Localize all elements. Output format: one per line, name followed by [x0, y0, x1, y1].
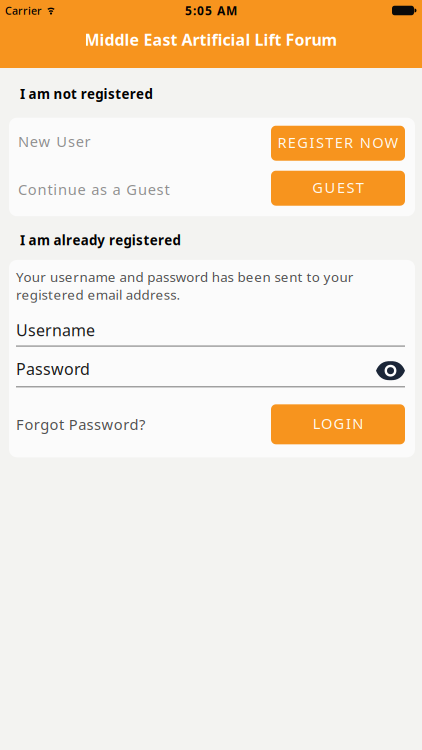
staticText: LOGIN	[313, 414, 363, 433]
button[interactable]: Show password	[376, 361, 405, 380]
button[interactable]: Forgot Password?	[16, 415, 145, 434]
staticText: GUEST	[312, 177, 364, 197]
staticText: 5:05 AM	[185, 2, 237, 18]
staticText: Password	[16, 358, 90, 379]
staticText: Your username and password has been sent…	[16, 268, 354, 303]
staticText: Username	[16, 319, 95, 340]
staticText: Continue as a Guest	[18, 179, 169, 199]
staticText: Forgot Password?	[16, 415, 145, 434]
button[interactable]: GUEST	[271, 171, 405, 206]
staticText: REGISTER NOW	[277, 132, 399, 152]
staticText: New User	[18, 131, 91, 151]
staticText: Carrier	[5, 3, 42, 18]
button[interactable]: REGISTER NOW	[271, 126, 405, 161]
staticText: I am already registered	[20, 231, 181, 249]
button[interactable]: LOGIN	[271, 404, 405, 444]
staticText: Middle East Artificial Lift Forum	[84, 29, 337, 50]
staticText: I am not registered	[20, 85, 152, 103]
